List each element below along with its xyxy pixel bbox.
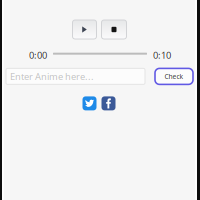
staticText: 0:10 (153, 49, 171, 61)
button[interactable]: Stop (101, 20, 126, 39)
staticText: 0:00 (29, 49, 47, 61)
button[interactable]: Share on Twitter (82, 96, 96, 110)
button[interactable]: Play (72, 20, 96, 39)
staticText: Check (164, 72, 183, 81)
button[interactable]: Check (155, 68, 193, 84)
button[interactable]: Share on Facebook (101, 96, 115, 110)
staticText: Enter Anime here... (10, 70, 94, 83)
